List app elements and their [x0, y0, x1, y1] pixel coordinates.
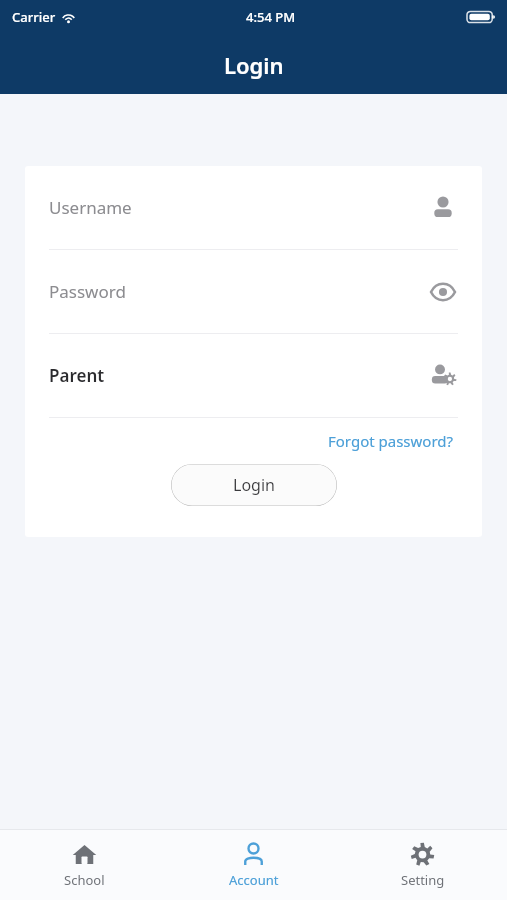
staticText: Login: [224, 50, 284, 80]
staticText: Parent: [49, 364, 105, 387]
button[interactable]: Setting: [338, 830, 507, 900]
staticText: School: [64, 871, 105, 889]
button[interactable]: School: [0, 830, 169, 900]
staticText: 4:54 PM: [246, 8, 296, 26]
button[interactable]: Password: [25, 250, 482, 333]
staticText: Username: [49, 196, 132, 219]
button[interactable]: Account: [169, 830, 338, 900]
other: Select account type: [428, 361, 458, 391]
other: Username: [428, 193, 458, 223]
button[interactable]: Parent: [25, 334, 482, 417]
button[interactable]: Login: [171, 464, 337, 506]
staticText: Setting: [401, 871, 445, 889]
other: Show password: [428, 277, 458, 307]
staticText: Account: [229, 871, 279, 889]
staticText: Carrier: [12, 8, 56, 26]
button[interactable]: Username: [25, 166, 482, 249]
staticText: Password: [49, 280, 126, 303]
staticText: Login: [233, 474, 275, 496]
button[interactable]: Forgot password?: [324, 427, 458, 455]
